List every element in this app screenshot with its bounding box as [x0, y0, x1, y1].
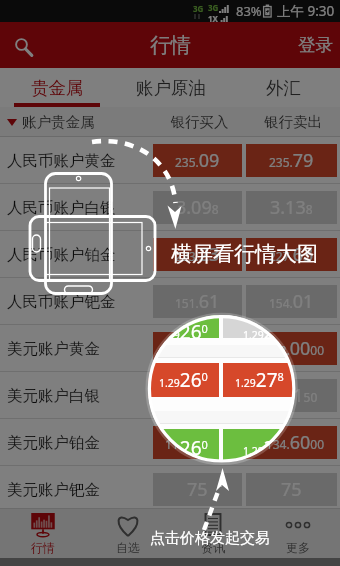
staticText: 美元账户黄金 [7, 339, 100, 359]
staticText: 75 [281, 477, 302, 502]
staticText: 83% [236, 2, 262, 20]
button[interactable]: 1122.0000 [246, 332, 337, 365]
staticText: 点击价格发起交易 [150, 529, 270, 548]
staticText: 1.29278 [235, 367, 284, 393]
staticText: 3G [193, 3, 204, 14]
staticText: 人民币账户铂金 [7, 245, 116, 265]
staticText: 账户原油 [136, 77, 206, 99]
staticText: 贵金属 [31, 77, 84, 99]
button[interactable]: 美元账户白银 [0, 372, 153, 419]
staticText: 账户贵金属 [22, 113, 95, 131]
button[interactable]: 资讯 [170, 509, 255, 558]
button[interactable]: 美元账户钯金 [0, 466, 153, 513]
staticText: 横屏看行情大图 [171, 241, 318, 267]
staticText: 1.29260 [159, 435, 208, 461]
staticText: 3.098 [176, 195, 219, 220]
button[interactable]: 更多 [255, 509, 340, 558]
staticText: 更多 [286, 540, 310, 555]
staticText: 1122.0000 [165, 430, 230, 455]
staticText: 人民币账户黄金 [7, 151, 116, 171]
staticText: 外汇 [266, 77, 301, 99]
staticText: 1134.6000 [259, 430, 324, 455]
staticText: 人民币账户白银 [7, 198, 116, 218]
button[interactable]: 16.1150 [246, 379, 337, 412]
button[interactable]: 外汇 [227, 68, 340, 107]
staticText: 行情 [150, 32, 191, 58]
staticText: 上午 9:30 [277, 2, 335, 20]
button[interactable]: 账户原油 [114, 68, 227, 107]
button[interactable]: Search [0, 23, 44, 67]
staticText: 1.292 [243, 319, 275, 345]
button[interactable]: 235.09 [153, 144, 242, 177]
button[interactable]: 15.6150 [153, 379, 242, 412]
button[interactable]: 235.79 [246, 144, 337, 177]
staticText: 登录 [298, 34, 333, 56]
button[interactable]: 美元账户黄金 [0, 325, 153, 372]
button[interactable]: 3.098 [153, 191, 242, 224]
staticText: 227.63 [269, 242, 314, 267]
button[interactable]: 1108.0000 [153, 332, 242, 365]
button[interactable]: 75 [153, 473, 242, 506]
button[interactable]: 行情 [0, 509, 85, 558]
button[interactable]: 75 [246, 473, 337, 506]
button[interactable]: 1134.6000 [246, 426, 337, 459]
staticText: 银行卖出 [246, 113, 340, 131]
button[interactable]: 人民币账户钯金 [0, 278, 153, 325]
staticText: 1.292 [243, 435, 275, 461]
staticText: 235.79 [269, 148, 314, 173]
staticText: 1.29260 [159, 319, 208, 345]
button[interactable]: 人民币账户铂金 [0, 231, 153, 278]
staticText: 美元账户白银 [7, 386, 100, 406]
staticText: 1108.0000 [165, 336, 230, 361]
staticText: 1122.0000 [259, 336, 324, 361]
button[interactable]: 154.01 [246, 285, 337, 318]
button[interactable]: 223.23 [153, 238, 242, 271]
staticText: 3.138 [270, 195, 313, 220]
staticText: 3G [208, 2, 219, 13]
button[interactable]: 人民币账户黄金 [0, 137, 153, 184]
button[interactable]: 227.63 [246, 238, 337, 271]
staticText: 1.29260 [159, 367, 208, 393]
staticText: 人民币账户钯金 [7, 292, 116, 312]
staticText: 151.61 [175, 289, 220, 314]
staticText: 15.6150 [172, 383, 224, 408]
button[interactable]: 贵金属 [0, 68, 114, 107]
button[interactable]: 账户贵金属 [7, 113, 153, 131]
button[interactable]: 3.138 [246, 191, 337, 224]
staticText: 154.01 [269, 289, 314, 314]
button[interactable]: 自选 [85, 509, 170, 558]
staticText: 16.1150 [266, 383, 318, 408]
staticText: 235.09 [175, 148, 220, 173]
staticText: 银行买入 [153, 113, 246, 131]
staticText: 美元账户钯金 [7, 480, 100, 500]
button[interactable]: 151.61 [153, 285, 242, 318]
button[interactable]: 美元账户铂金 [0, 419, 153, 466]
button[interactable]: 登录 [284, 22, 340, 68]
staticText: 自选 [116, 540, 140, 555]
staticText: 75 [187, 477, 208, 502]
button[interactable]: 人民币账户白银 [0, 184, 153, 231]
staticText: 美元账户铂金 [7, 433, 100, 453]
staticText: 资讯 [201, 540, 225, 555]
staticText: 223.23 [175, 242, 220, 267]
staticText: 1X [208, 13, 218, 24]
staticText: 行情 [31, 540, 55, 555]
button[interactable]: 1122.0000 [153, 426, 242, 459]
